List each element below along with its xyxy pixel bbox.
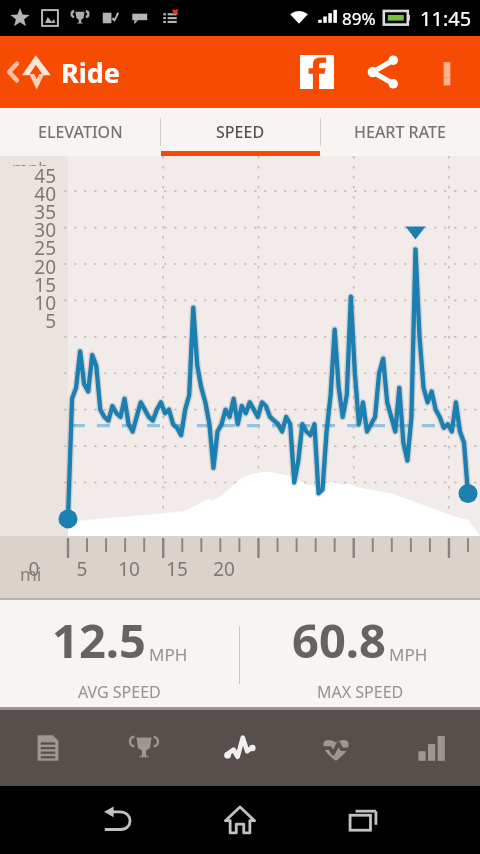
button[interactable]: Recent apps	[332, 789, 394, 851]
button[interactable]: SPEED	[161, 108, 320, 156]
button[interactable]: 12.5	[0, 600, 239, 710]
staticText: MPH	[149, 643, 188, 666]
button[interactable]: More options	[418, 36, 476, 108]
staticText: 11:45	[420, 5, 472, 32]
staticText: 12.5	[52, 608, 146, 672]
staticText: 20	[210, 556, 238, 582]
button[interactable]: Navigate up	[0, 36, 128, 108]
button[interactable]: 60.8	[240, 600, 480, 710]
button[interactable]: Share	[348, 36, 418, 108]
staticText: 35	[14, 199, 56, 225]
staticText: 60.8	[292, 608, 386, 672]
staticText: mph	[12, 156, 49, 166]
staticText: 25	[14, 235, 56, 261]
staticText: ELEVATION	[38, 121, 123, 143]
staticText: 10	[115, 556, 143, 582]
staticText: mi	[20, 562, 42, 587]
staticText: 30	[14, 217, 56, 243]
staticText: 89%	[342, 7, 376, 30]
staticText: Ride	[61, 54, 120, 91]
button[interactable]: Overview	[0, 710, 96, 786]
staticText: SPEED	[216, 121, 265, 143]
staticText: 5	[14, 308, 56, 334]
staticText: MAX SPEED	[317, 681, 404, 703]
staticText: 5	[68, 556, 96, 582]
button[interactable]: Home	[209, 789, 271, 851]
staticText: 15	[163, 556, 191, 582]
staticText: 45	[14, 163, 56, 189]
button[interactable]: Analysis	[192, 710, 288, 786]
staticText: MPH	[389, 643, 428, 666]
staticText: 40	[14, 181, 56, 207]
staticText: 15	[14, 272, 56, 298]
staticText: HEART RATE	[354, 121, 447, 143]
staticText: AVG SPEED	[78, 681, 161, 703]
button[interactable]: Heart rate	[288, 710, 384, 786]
button[interactable]: Achievements	[96, 710, 192, 786]
button[interactable]: Back	[86, 789, 148, 851]
staticText: 20	[14, 254, 56, 280]
staticText: 0	[20, 556, 48, 582]
staticText: 10	[14, 290, 56, 316]
button[interactable]: Share on Facebook	[286, 36, 348, 108]
button[interactable]: Stats	[384, 710, 480, 786]
button[interactable]: HEART RATE	[321, 108, 480, 156]
button[interactable]: ELEVATION	[0, 108, 160, 156]
